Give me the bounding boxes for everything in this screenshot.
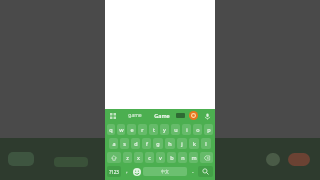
button[interactable]: Theme: [189, 111, 198, 120]
button[interactable]: j: [177, 138, 187, 149]
button[interactable]: Backspace: [200, 152, 213, 163]
staticText: q: [109, 126, 113, 133]
button[interactable]: l: [201, 138, 211, 149]
staticText: e: [130, 126, 134, 133]
button[interactable]: Comma: [122, 165, 131, 178]
button[interactable]: Space: [143, 167, 187, 176]
button[interactable]: Game: [148, 109, 176, 122]
staticText: p: [207, 126, 211, 133]
staticText: ?123: [109, 169, 119, 175]
staticText: w: [119, 126, 124, 133]
staticText: d: [134, 140, 138, 147]
staticText: t: [153, 126, 155, 133]
staticText: b: [170, 154, 174, 161]
button[interactable]: w: [117, 124, 125, 135]
button[interactable]: Period: [188, 165, 197, 178]
button[interactable]: u: [171, 124, 180, 135]
staticText: ,: [126, 168, 128, 175]
staticText: 中文: [161, 169, 169, 174]
staticText: s: [123, 140, 126, 147]
button[interactable]: s: [120, 138, 129, 149]
button[interactable]: q: [107, 124, 115, 135]
button[interactable]: m: [189, 152, 198, 163]
button[interactable]: n: [178, 152, 187, 163]
button[interactable]: a: [109, 138, 118, 149]
button[interactable]: o: [193, 124, 202, 135]
button[interactable]: Language: [176, 113, 185, 118]
staticText: h: [168, 140, 172, 147]
button[interactable]: x: [134, 152, 143, 163]
staticText: k: [193, 140, 196, 147]
button[interactable]: game: [121, 109, 148, 122]
button[interactable]: c: [145, 152, 154, 163]
button[interactable]: ?123: [107, 166, 121, 177]
staticText: l: [205, 140, 207, 147]
button[interactable]: h: [165, 138, 175, 149]
staticText: c: [148, 154, 151, 161]
button[interactable]: Emoji: [131, 165, 142, 178]
staticText: a: [112, 140, 116, 147]
staticText: Game: [154, 112, 170, 119]
staticText: v: [159, 154, 162, 161]
staticText: m: [191, 154, 197, 161]
button[interactable]: r: [138, 124, 147, 135]
button[interactable]: Keyboard options: [108, 111, 117, 120]
button[interactable]: e: [127, 124, 136, 135]
staticText: u: [174, 126, 178, 133]
button[interactable]: y: [160, 124, 169, 135]
button[interactable]: b: [167, 152, 176, 163]
button[interactable]: t: [149, 124, 158, 135]
staticText: i: [186, 126, 188, 133]
button[interactable]: z: [123, 152, 132, 163]
staticText: g: [156, 140, 160, 147]
button[interactable]: Shift: [107, 152, 121, 163]
button[interactable]: v: [156, 152, 165, 163]
staticText: n: [181, 154, 185, 161]
staticText: z: [126, 154, 129, 161]
button[interactable]: Voice input: [202, 111, 212, 121]
button[interactable]: k: [189, 138, 199, 149]
staticText: .: [192, 168, 194, 175]
staticText: f: [146, 140, 148, 147]
staticText: j: [181, 140, 183, 147]
button[interactable]: d: [131, 138, 140, 149]
staticText: o: [196, 126, 200, 133]
staticText: r: [141, 126, 144, 133]
button[interactable]: p: [204, 124, 213, 135]
button[interactable]: i: [182, 124, 191, 135]
button[interactable]: Search: [198, 166, 213, 177]
staticText: game: [128, 112, 142, 119]
staticText: x: [137, 154, 140, 161]
staticText: y: [163, 126, 166, 133]
button[interactable]: f: [142, 138, 151, 149]
button[interactable]: g: [153, 138, 163, 149]
